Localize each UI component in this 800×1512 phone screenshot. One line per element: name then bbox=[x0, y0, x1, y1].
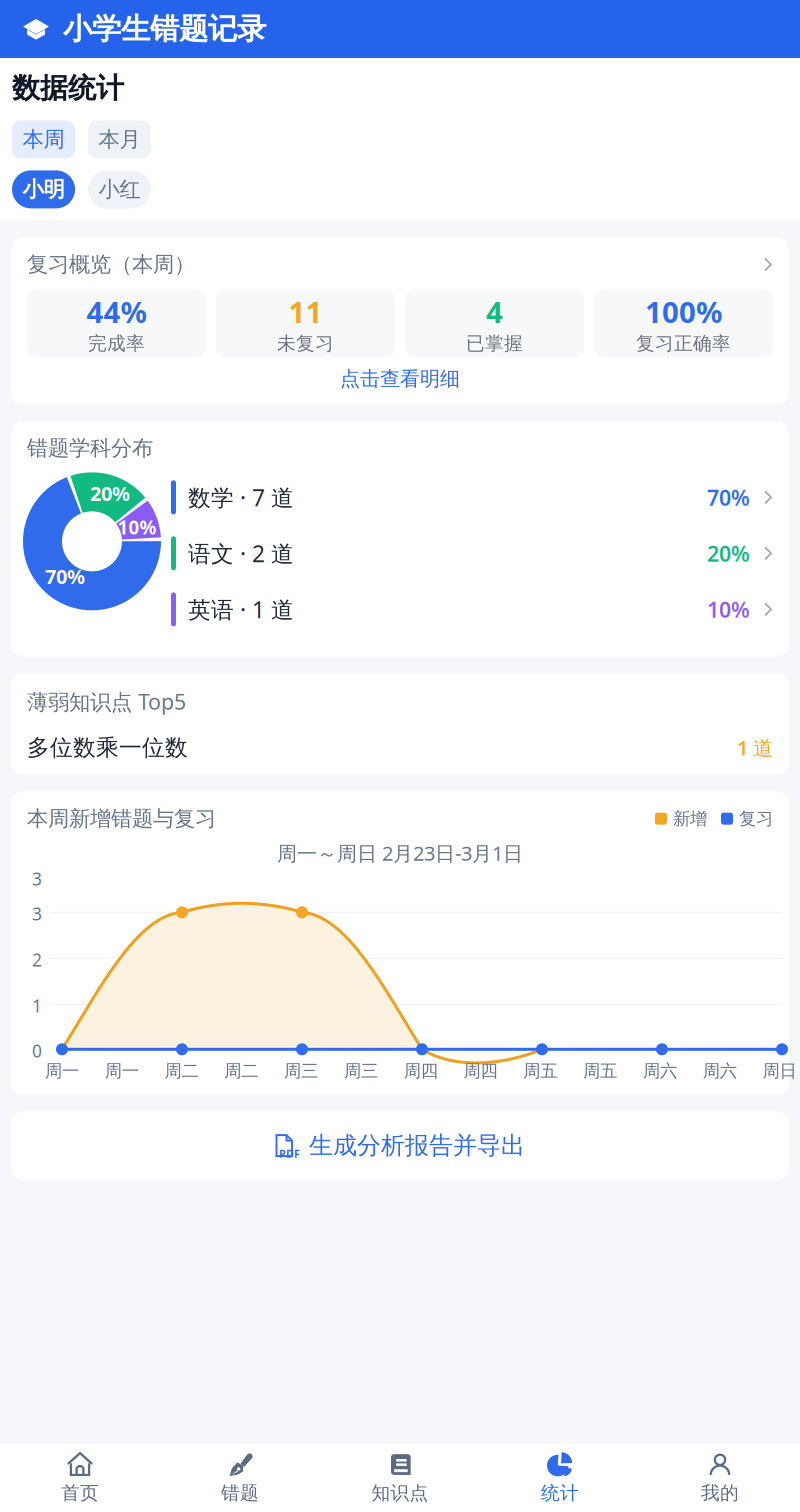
staticText: 周一 bbox=[45, 1060, 79, 1082]
staticText: 周一 bbox=[105, 1060, 139, 1082]
staticText: 知识点 bbox=[371, 1481, 428, 1504]
button[interactable]: 本周 bbox=[12, 120, 75, 158]
button[interactable]: 小红 bbox=[88, 170, 151, 208]
button[interactable]: 知识点 bbox=[320, 1444, 480, 1512]
staticText: 本周新增错题与复习 bbox=[27, 805, 216, 832]
staticText: 多位数乘一位数 bbox=[27, 734, 188, 761]
staticText: 0 bbox=[32, 1039, 42, 1062]
staticText: 本月 bbox=[98, 126, 140, 152]
staticText: 周六 bbox=[703, 1060, 737, 1082]
staticText: 周五 bbox=[523, 1060, 557, 1082]
staticText: 薄弱知识点 Top5 bbox=[27, 687, 186, 716]
staticText: 点击查看明细 bbox=[340, 367, 460, 391]
staticText: 4 bbox=[486, 292, 503, 331]
staticText: 3 bbox=[32, 902, 42, 925]
staticText: 10% bbox=[117, 515, 156, 540]
button[interactable]: 小明 bbox=[12, 170, 75, 208]
staticText: 数据统计 bbox=[12, 71, 124, 105]
staticText: 周四 bbox=[404, 1060, 438, 1082]
staticText: 统计 bbox=[541, 1481, 579, 1504]
staticText: 2 bbox=[32, 948, 42, 971]
staticText: 10% bbox=[707, 595, 750, 623]
staticText: 20% bbox=[707, 539, 750, 567]
staticText: 周二 bbox=[224, 1060, 258, 1082]
staticText: 英语 · 1 道 bbox=[188, 594, 294, 624]
button[interactable]: 英语 · 1 道 bbox=[171, 581, 773, 637]
staticText: 错题学科分布 bbox=[27, 435, 153, 461]
staticText: 70% bbox=[45, 563, 85, 590]
staticText: 完成率 bbox=[88, 332, 145, 355]
staticText: 100% bbox=[645, 292, 722, 331]
button[interactable]: 本月 bbox=[88, 120, 151, 158]
staticText: 已掌握 bbox=[466, 332, 523, 355]
staticText: 周五 bbox=[583, 1060, 617, 1082]
staticText: 数学 · 7 道 bbox=[188, 482, 294, 512]
staticText: 周六 bbox=[643, 1060, 677, 1082]
button[interactable]: 数学 · 7 道 bbox=[171, 469, 773, 525]
staticText: 复习概览（本周） bbox=[27, 251, 195, 278]
button[interactable]: 统计 bbox=[480, 1444, 640, 1512]
staticText: 错题 bbox=[221, 1481, 259, 1504]
staticText: 70% bbox=[707, 483, 750, 511]
staticText: 新增 bbox=[673, 808, 707, 829]
button[interactable]: 首页 bbox=[0, 1444, 160, 1512]
staticText: PDF bbox=[279, 1147, 300, 1161]
staticText: 小红 bbox=[98, 176, 140, 202]
staticText: 44% bbox=[86, 292, 146, 331]
staticText: 周四 bbox=[463, 1060, 497, 1082]
button[interactable]: 错题 bbox=[160, 1444, 320, 1512]
button[interactable]: PDF bbox=[0, 1112, 800, 1180]
staticText: 生成分析报告并导出 bbox=[309, 1131, 525, 1160]
staticText: 11 bbox=[288, 292, 322, 331]
staticText: 小学生错题记录 bbox=[63, 11, 266, 47]
button[interactable]: 语文 · 2 道 bbox=[171, 525, 773, 581]
staticText: 复习正确率 bbox=[636, 332, 731, 355]
button[interactable]: 点击查看明细 bbox=[27, 358, 773, 391]
staticText: 1 bbox=[32, 994, 42, 1017]
staticText: 周一～周日 2月23日-3月1日 bbox=[277, 840, 523, 866]
staticText: 未复习 bbox=[277, 332, 334, 355]
staticText: 周日 bbox=[762, 1060, 796, 1082]
staticText: 20% bbox=[90, 480, 130, 507]
staticText: 语文 · 2 道 bbox=[188, 538, 294, 568]
staticText: 我的 bbox=[701, 1481, 739, 1504]
staticText: 复习 bbox=[739, 808, 773, 829]
staticText: 1 道 bbox=[737, 734, 773, 761]
staticText: 3 bbox=[32, 867, 42, 890]
staticText: 本周 bbox=[22, 126, 64, 152]
button[interactable]: 我的 bbox=[640, 1444, 800, 1512]
staticText: 首页 bbox=[61, 1481, 99, 1504]
staticText: 周三 bbox=[344, 1060, 378, 1082]
staticText: 周三 bbox=[284, 1060, 318, 1082]
staticText: 小明 bbox=[22, 176, 64, 202]
staticText: 周二 bbox=[164, 1060, 198, 1082]
